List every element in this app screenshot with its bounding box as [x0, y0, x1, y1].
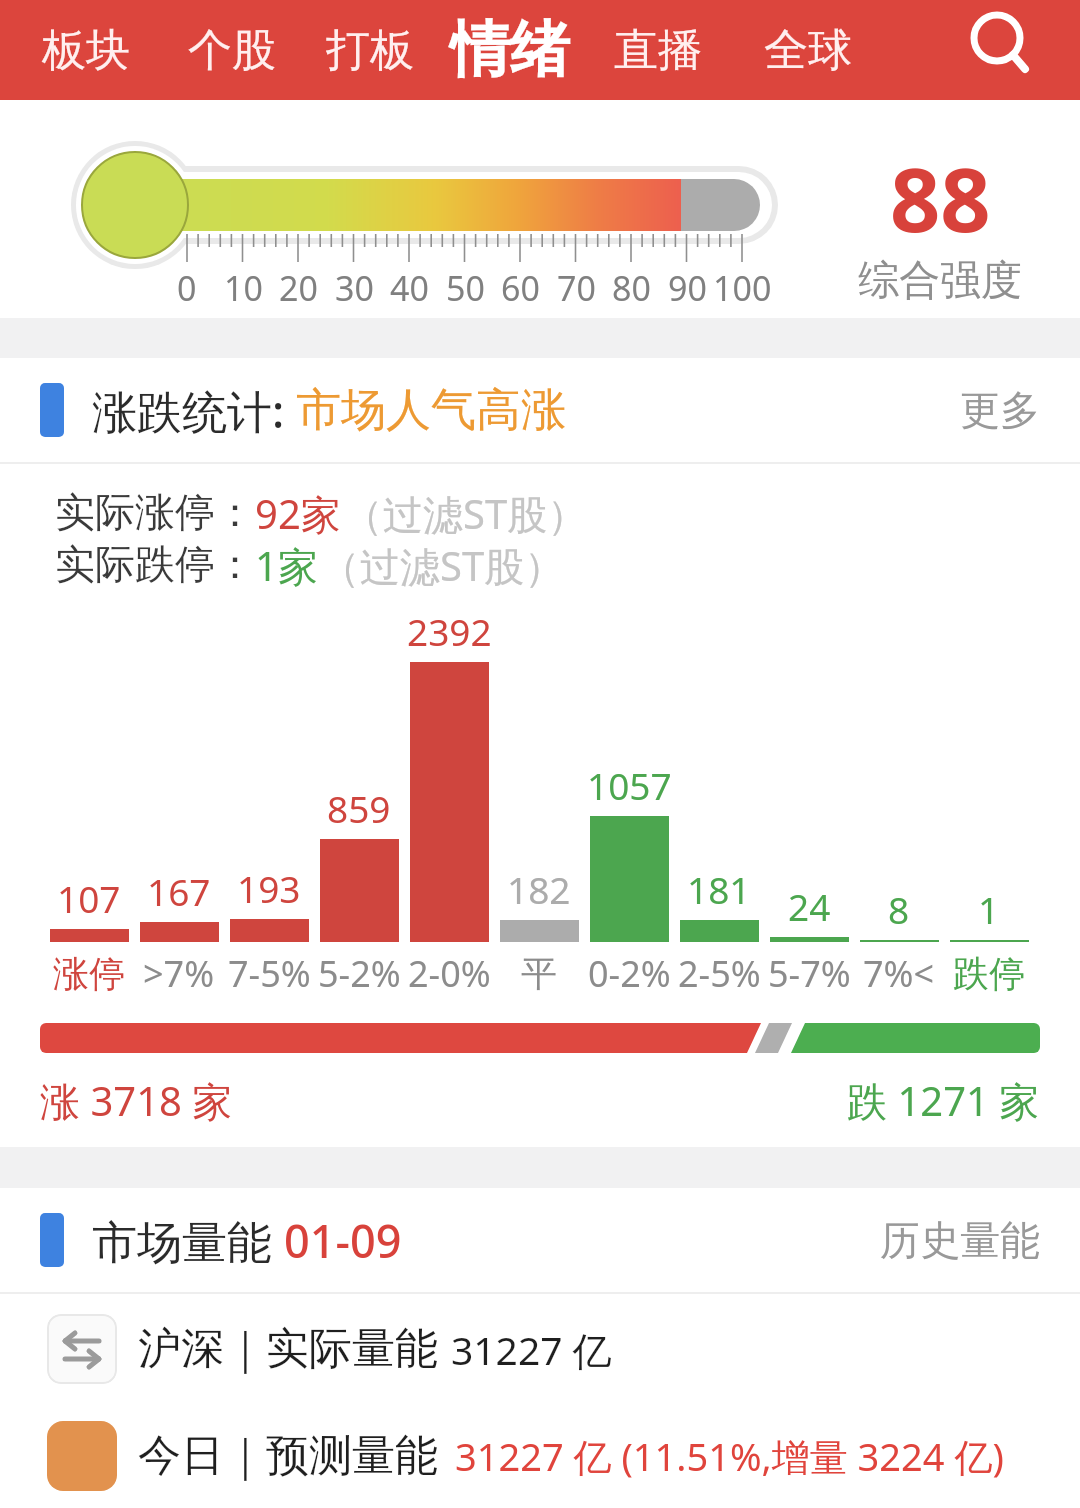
staticText: 综合强度 — [858, 255, 1022, 307]
staticText: 7-5% — [228, 949, 311, 998]
staticText: 10 — [224, 265, 263, 311]
staticText: （过滤ST股） — [343, 486, 588, 538]
button[interactable]: 个股 — [188, 23, 276, 78]
staticText: 193 — [237, 863, 301, 913]
staticText: 100 — [713, 265, 772, 311]
staticText: 跌 1271 家 — [847, 1073, 1040, 1125]
staticText: 107 — [57, 873, 121, 923]
staticText: 0-2% — [588, 949, 671, 998]
staticText: 859 — [327, 783, 391, 833]
staticText: 沪深｜实际量能 — [138, 1322, 439, 1376]
staticText: 5-7% — [768, 949, 851, 998]
staticText: 实际跌停： — [55, 539, 255, 589]
staticText: （过滤ST股） — [320, 538, 565, 590]
staticText: 7%< — [863, 949, 935, 998]
staticText: 20 — [279, 265, 318, 311]
staticText: 01-09 — [284, 1210, 402, 1271]
staticText: 182 — [507, 864, 571, 914]
staticText: 30 — [335, 265, 374, 311]
staticText: 市场量能 — [92, 1210, 284, 1271]
staticText: >7% — [143, 949, 215, 998]
staticText: 2-5% — [678, 949, 761, 998]
staticText: 181 — [687, 864, 751, 914]
staticText: 167 — [147, 866, 211, 916]
staticText: 24 — [788, 881, 831, 931]
staticText: 实际涨停： — [55, 487, 255, 537]
staticText: 60 — [501, 265, 540, 311]
staticText: 1家 — [255, 538, 318, 590]
button[interactable]: 打板 — [326, 23, 414, 78]
button[interactable]: 今日｜预测量能 — [47, 1404, 1080, 1508]
staticText: 88 — [890, 138, 991, 258]
staticText: 90 — [668, 265, 707, 311]
button[interactable]: 更多 — [960, 385, 1040, 435]
button[interactable]: 情绪 — [450, 12, 570, 88]
button[interactable]: 直播 — [614, 23, 702, 78]
staticText: 2392 — [407, 606, 492, 656]
staticText: 5-2% — [318, 949, 401, 998]
staticText: 2-0% — [408, 949, 491, 998]
staticText: 0 — [177, 265, 197, 311]
staticText: 今日｜预测量能 — [138, 1429, 439, 1483]
button[interactable]: 历史量能 — [880, 1215, 1040, 1265]
button[interactable]: 沪深｜实际量能 — [47, 1294, 1080, 1404]
staticText: 平 — [521, 951, 557, 996]
button[interactable]: 全球 — [764, 23, 852, 78]
staticText: 80 — [612, 265, 651, 311]
staticText: 1057 — [587, 760, 672, 810]
button[interactable] — [965, 8, 1035, 78]
staticText: 31227 亿 (11.51%,增量 3224 亿) — [455, 1430, 1004, 1482]
button[interactable]: 板块 — [42, 23, 130, 78]
staticText: 1 — [978, 884, 1000, 934]
staticText: 40 — [390, 265, 429, 311]
staticText: 8 — [888, 884, 910, 934]
staticText: 跌停 — [953, 951, 1025, 996]
staticText: 涨停 — [53, 951, 125, 996]
staticText: 70 — [557, 265, 596, 311]
staticText: 50 — [446, 265, 485, 311]
staticText: 涨跌统计: — [92, 380, 296, 441]
staticText: 92家 — [255, 486, 341, 538]
staticText: 市场人气高涨 — [296, 382, 566, 439]
staticText: 31227 亿 — [451, 1323, 612, 1376]
staticText: 涨 3718 家 — [40, 1073, 233, 1125]
